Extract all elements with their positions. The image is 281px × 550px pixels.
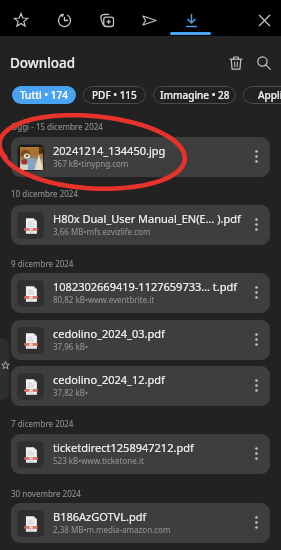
staticText: Immagine • 28 (160, 88, 230, 102)
button[interactable]: Immagine • 28 (153, 86, 236, 104)
button[interactable]: PDF • 115 (83, 86, 146, 104)
staticText: Download (10, 54, 76, 72)
staticText: 367 kB•tinypng.com (53, 158, 242, 169)
staticText: 9 dicembre 2024 (11, 258, 74, 269)
staticText: 3,66 MB•mfs.ezvizlife.com (53, 226, 242, 237)
staticText: ticketdirect1258947212.pdf (53, 440, 242, 455)
button[interactable]: More options (243, 279, 270, 306)
staticText: cedolino_2024_12.pdf (53, 372, 242, 387)
staticText: 80,82 kB•www.eventbrite.it (53, 294, 242, 305)
staticText: 2,38 MB•m.media-amazon.com (53, 524, 242, 535)
staticText: 523 kB•www.ticketone.it (53, 455, 242, 466)
button[interactable]: More options (243, 509, 270, 536)
staticText: PDF • 115 (92, 88, 137, 102)
button[interactable]: More options (243, 143, 270, 170)
button[interactable]: Bookmarks (6, 5, 36, 35)
button[interactable]: Applic (243, 86, 281, 104)
button[interactable]: H80x Dual_User Manual_EN(E… ).pdf (11, 205, 270, 245)
button[interactable]: More options (243, 211, 270, 238)
button[interactable]: More options (243, 372, 270, 399)
button[interactable]: Share (134, 5, 164, 35)
staticText: Oggi - 15 dicembre 2024 (11, 121, 103, 132)
button[interactable]: B186AzGOTVL.pdf (11, 503, 270, 543)
button[interactable]: Tutti • 174 (12, 86, 76, 104)
button[interactable]: 1082302669419-1127659733… t.pdf (11, 273, 270, 313)
staticText: 37,82 kB• (53, 387, 242, 398)
button[interactable]: Tabs (92, 5, 122, 35)
button[interactable]: More options (243, 440, 270, 467)
button[interactable]: cedolino_2024_12.pdf (11, 366, 270, 406)
staticText: 37,96 kB• (53, 341, 242, 352)
button[interactable]: Search (249, 48, 279, 78)
staticText: 1082302669419-1127659733… t.pdf (53, 279, 242, 294)
staticText: Tutti • 174 (20, 88, 68, 102)
button[interactable]: Delete (221, 48, 251, 78)
staticText: 30 novembre 2024 (11, 488, 81, 499)
staticText: 10 dicembre 2024 (11, 188, 79, 199)
button[interactable]: History (49, 5, 79, 35)
button[interactable]: cedolino_2024_03.pdf (11, 320, 270, 360)
button[interactable]: More options (243, 326, 270, 353)
staticText: cedolino_2024_03.pdf (53, 326, 242, 341)
staticText: B186AzGOTVL.pdf (53, 509, 242, 524)
staticText: 7 dicembre 2024 (11, 418, 74, 429)
button[interactable]: Close (249, 5, 279, 35)
staticText: H80x Dual_User Manual_EN(E… ).pdf (53, 211, 242, 226)
staticText: Applic (258, 88, 281, 102)
button[interactable]: Downloads (176, 5, 206, 35)
staticText: 20241214_134450.jpg (53, 143, 242, 158)
button[interactable]: 20241214_134450.jpg (11, 137, 270, 177)
button[interactable]: ticketdirect1258947212.pdf (11, 434, 270, 474)
